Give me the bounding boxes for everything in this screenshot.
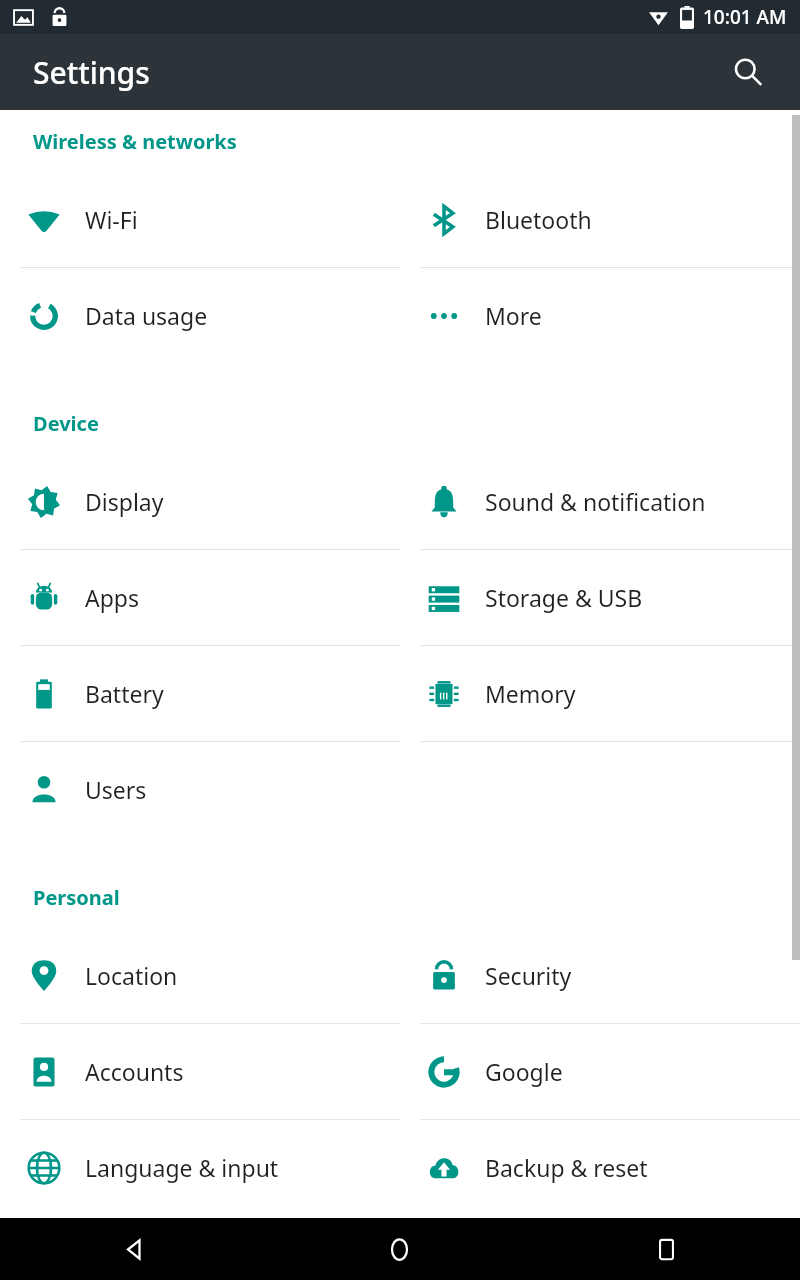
staticText: Location (85, 960, 178, 991)
button[interactable]: Wi-Fi (0, 172, 400, 267)
button[interactable]: Backup & reset (400, 1120, 800, 1215)
staticText: Personal (33, 884, 120, 911)
staticText: Accounts (85, 1056, 184, 1087)
button[interactable]: Sound & notification (400, 454, 800, 549)
staticText: Security (485, 960, 572, 991)
button[interactable]: Back (0, 1218, 266, 1280)
staticText: Bluetooth (485, 204, 592, 235)
button[interactable]: Memory (400, 646, 800, 741)
button[interactable]: Data usage (0, 268, 400, 363)
staticText: Device (33, 410, 99, 437)
button[interactable]: Security (400, 928, 800, 1023)
button[interactable]: Home (266, 1218, 533, 1280)
staticText: Backup & reset (485, 1152, 648, 1183)
staticText: Language & input (85, 1152, 279, 1183)
button[interactable]: Display (0, 454, 400, 549)
staticText: Google (485, 1056, 563, 1087)
staticText: Sound & notification (485, 486, 706, 517)
staticText: Battery (85, 678, 164, 709)
staticText: Data usage (85, 300, 208, 331)
staticText: Storage & USB (485, 582, 643, 613)
button[interactable]: Search (722, 46, 774, 98)
staticText: Settings (33, 52, 150, 93)
button[interactable]: Location (0, 928, 400, 1023)
staticText: Wi-Fi (85, 204, 138, 235)
staticText: Display (85, 486, 164, 517)
button[interactable]: Apps (0, 550, 400, 645)
staticText: Wireless & networks (33, 128, 237, 155)
button[interactable]: Language & input (0, 1120, 400, 1215)
staticText: Memory (485, 678, 576, 709)
staticText: More (485, 300, 542, 331)
button[interactable]: Recent apps (533, 1218, 800, 1280)
staticText: Users (85, 774, 147, 805)
button[interactable]: Battery (0, 646, 400, 741)
staticText: 10:01 AM (703, 4, 787, 30)
staticText: Apps (85, 582, 140, 613)
button[interactable]: Storage & USB (400, 550, 800, 645)
button[interactable]: Users (0, 742, 400, 837)
button[interactable]: Accounts (0, 1024, 400, 1119)
button[interactable]: More (400, 268, 800, 363)
button[interactable]: Bluetooth (400, 172, 800, 267)
button[interactable]: Google (400, 1024, 800, 1119)
